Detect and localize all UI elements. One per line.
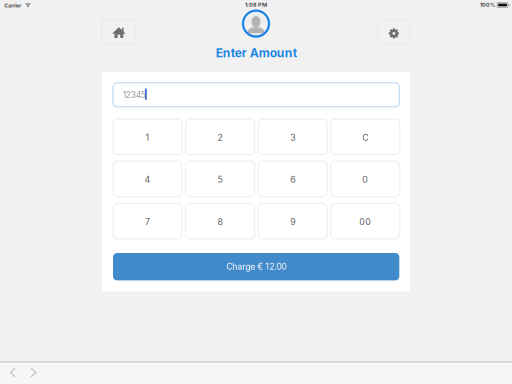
staticText: 2 xyxy=(218,132,223,143)
staticText: Carrier xyxy=(4,2,21,9)
button[interactable]: Charge € 12.00 xyxy=(113,253,399,280)
button[interactable]: Forward xyxy=(25,364,42,381)
button[interactable]: 2 xyxy=(186,119,255,154)
staticText: Enter Amount xyxy=(216,45,297,60)
button[interactable]: Back xyxy=(4,364,21,381)
button[interactable]: 3 xyxy=(258,119,327,154)
button[interactable]: 6 xyxy=(258,161,327,197)
staticText: 0 xyxy=(362,174,368,185)
button[interactable]: 9 xyxy=(258,203,327,239)
button[interactable]: C xyxy=(331,119,400,154)
staticText: 9 xyxy=(290,216,295,227)
button[interactable]: 7 xyxy=(113,203,182,239)
staticText: Charge € 12.00 xyxy=(226,261,286,272)
staticText: 3 xyxy=(290,132,295,143)
staticText: 12345 xyxy=(123,90,146,100)
button[interactable]: Home xyxy=(102,20,136,44)
staticText: 100% xyxy=(480,1,495,8)
staticText: 5 xyxy=(218,174,223,185)
staticText: 1 xyxy=(145,132,149,143)
staticText: C xyxy=(362,132,368,143)
staticText: 1:08 PM xyxy=(245,1,267,8)
button[interactable]: 5 xyxy=(186,161,255,197)
button[interactable]: 00 xyxy=(331,203,400,239)
staticText: 7 xyxy=(145,216,150,227)
staticText: 6 xyxy=(290,174,295,185)
button[interactable]: Settings xyxy=(378,20,410,44)
button[interactable]: 1 xyxy=(113,119,182,154)
button[interactable]: 8 xyxy=(186,203,255,239)
staticText: 4 xyxy=(144,174,150,185)
button[interactable]: 4 xyxy=(113,161,182,197)
button[interactable]: Profile xyxy=(242,9,270,38)
staticText: 8 xyxy=(218,216,223,227)
button[interactable]: 0 xyxy=(331,161,400,197)
staticText: 00 xyxy=(359,216,371,227)
